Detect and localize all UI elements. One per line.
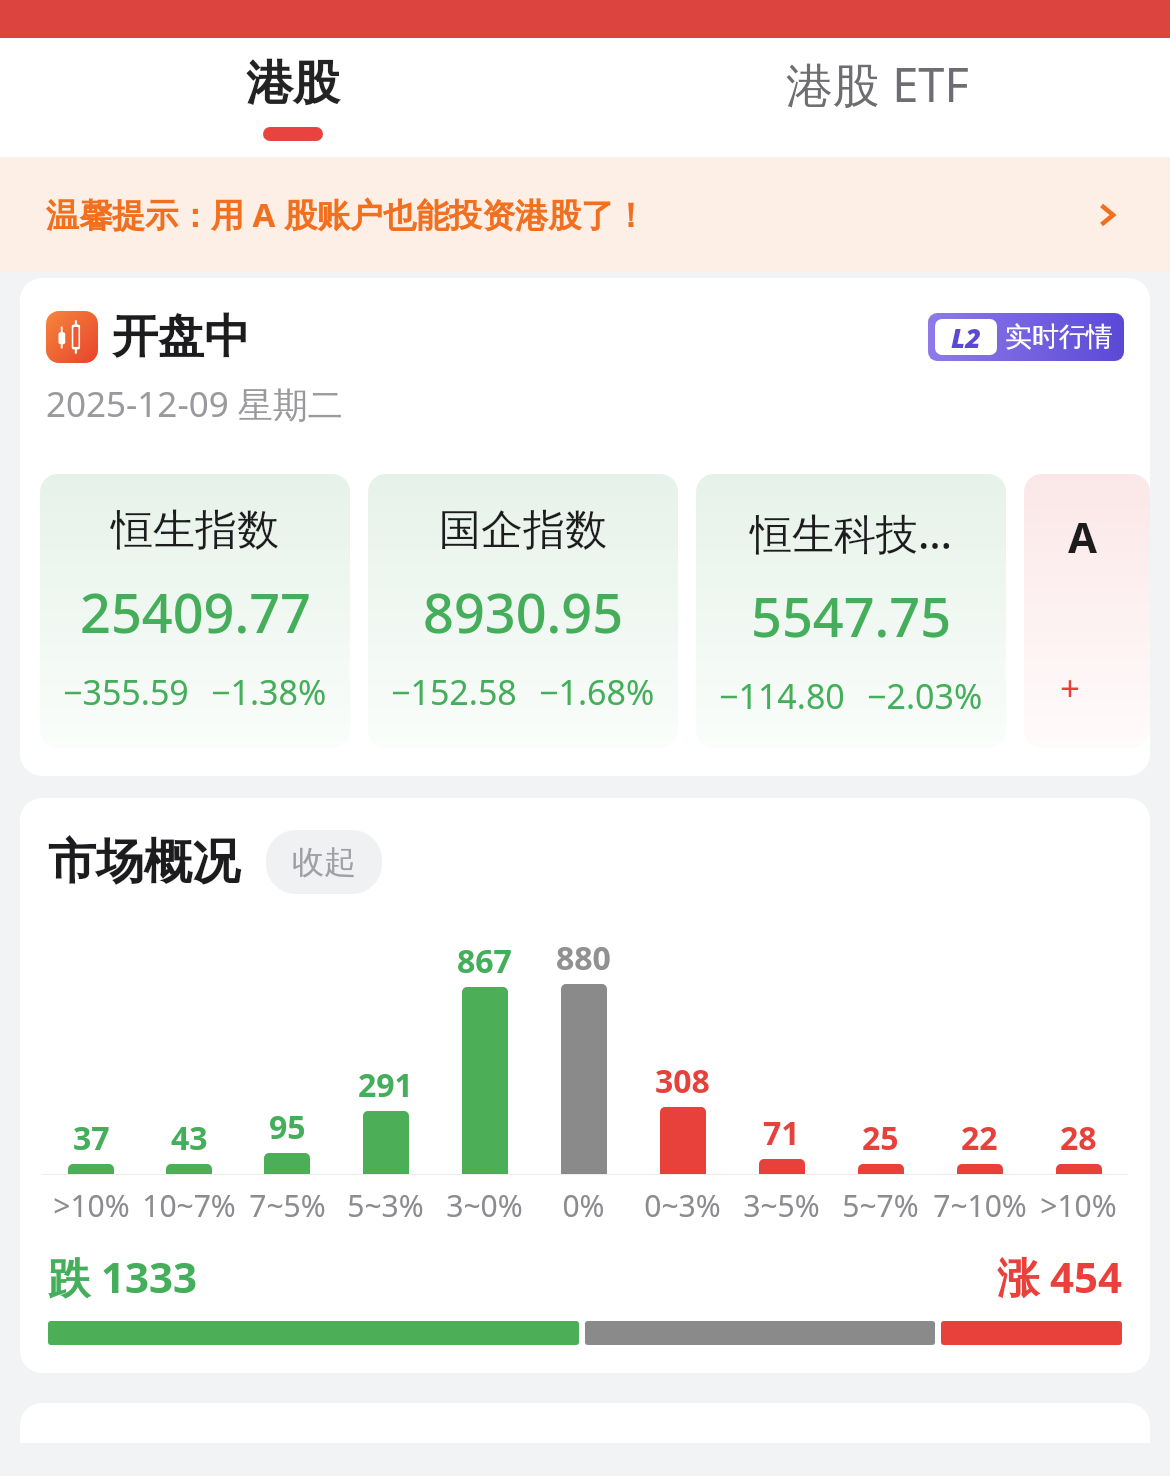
staticText: + — [1060, 664, 1081, 712]
staticText: A — [1068, 508, 1098, 565]
staticText: 22 — [961, 1116, 998, 1160]
staticText: 28 — [1060, 1116, 1097, 1160]
staticText: 收起 — [292, 842, 356, 882]
staticText: 3~5% — [743, 1185, 820, 1226]
button[interactable]: 港股 ETF — [585, 38, 1170, 157]
button[interactable]: 港股 — [0, 38, 585, 157]
staticText: 95 — [269, 1105, 306, 1149]
staticText: L2 — [951, 319, 981, 355]
button[interactable]: 国企指数 — [368, 474, 678, 748]
staticText: 43 — [171, 1116, 208, 1160]
button[interactable]: A — [1024, 474, 1150, 748]
staticText: 恒生指数 — [111, 504, 279, 557]
staticText: 恒生科技… — [750, 504, 953, 561]
staticText: 7~10% — [933, 1185, 1027, 1226]
staticText: −1.68% — [539, 669, 655, 715]
staticText: 867 — [457, 939, 512, 983]
staticText: >10% — [53, 1185, 130, 1226]
button[interactable]: 恒生指数 — [40, 474, 350, 748]
staticText: 开盘中 — [112, 308, 250, 366]
staticText: 0~3% — [644, 1185, 721, 1226]
staticText: 港股 ETF — [786, 52, 969, 116]
staticText: 5~7% — [842, 1185, 919, 1226]
staticText: 308 — [655, 1059, 710, 1103]
staticText: −1.38% — [211, 669, 327, 715]
staticText: 10~7% — [142, 1185, 236, 1226]
staticText: 25 — [862, 1116, 899, 1160]
staticText: 实时行情 — [1005, 320, 1113, 354]
staticText: 国企指数 — [439, 504, 607, 557]
staticText: 0% — [562, 1185, 605, 1226]
staticText: 291 — [358, 1063, 413, 1107]
staticText: 5547.75 — [751, 579, 952, 653]
staticText: −114.80 — [719, 673, 845, 719]
staticText: 跌 1333 — [48, 1248, 198, 1305]
staticText: 2025-12-09 星期二 — [46, 380, 343, 428]
button[interactable]: 恒生科技… — [696, 474, 1006, 748]
staticText: 37 — [73, 1116, 110, 1160]
staticText: 7~5% — [249, 1185, 326, 1226]
staticText: −355.59 — [63, 669, 189, 715]
staticText: 880 — [556, 936, 611, 980]
staticText: 25409.77 — [80, 575, 311, 649]
button[interactable]: 温馨提示：用 A 股账户也能投资港股了！ — [0, 157, 1170, 272]
staticText: 港股 — [246, 54, 340, 113]
staticText: −2.03% — [867, 673, 983, 719]
staticText: 8930.95 — [423, 575, 624, 649]
button[interactable]: L2 — [928, 313, 1124, 361]
staticText: 温馨提示：用 A 股账户也能投资港股了！ — [46, 192, 1090, 237]
staticText: 71 — [763, 1111, 800, 1155]
staticText: −152.58 — [391, 669, 517, 715]
staticText: 3~0% — [446, 1185, 523, 1226]
staticText: 5~3% — [347, 1185, 424, 1226]
staticText: 涨 454 — [997, 1248, 1122, 1305]
staticText: >10% — [1040, 1185, 1117, 1226]
button[interactable]: 收起 — [266, 830, 382, 894]
staticText: 市场概况 — [48, 832, 240, 892]
